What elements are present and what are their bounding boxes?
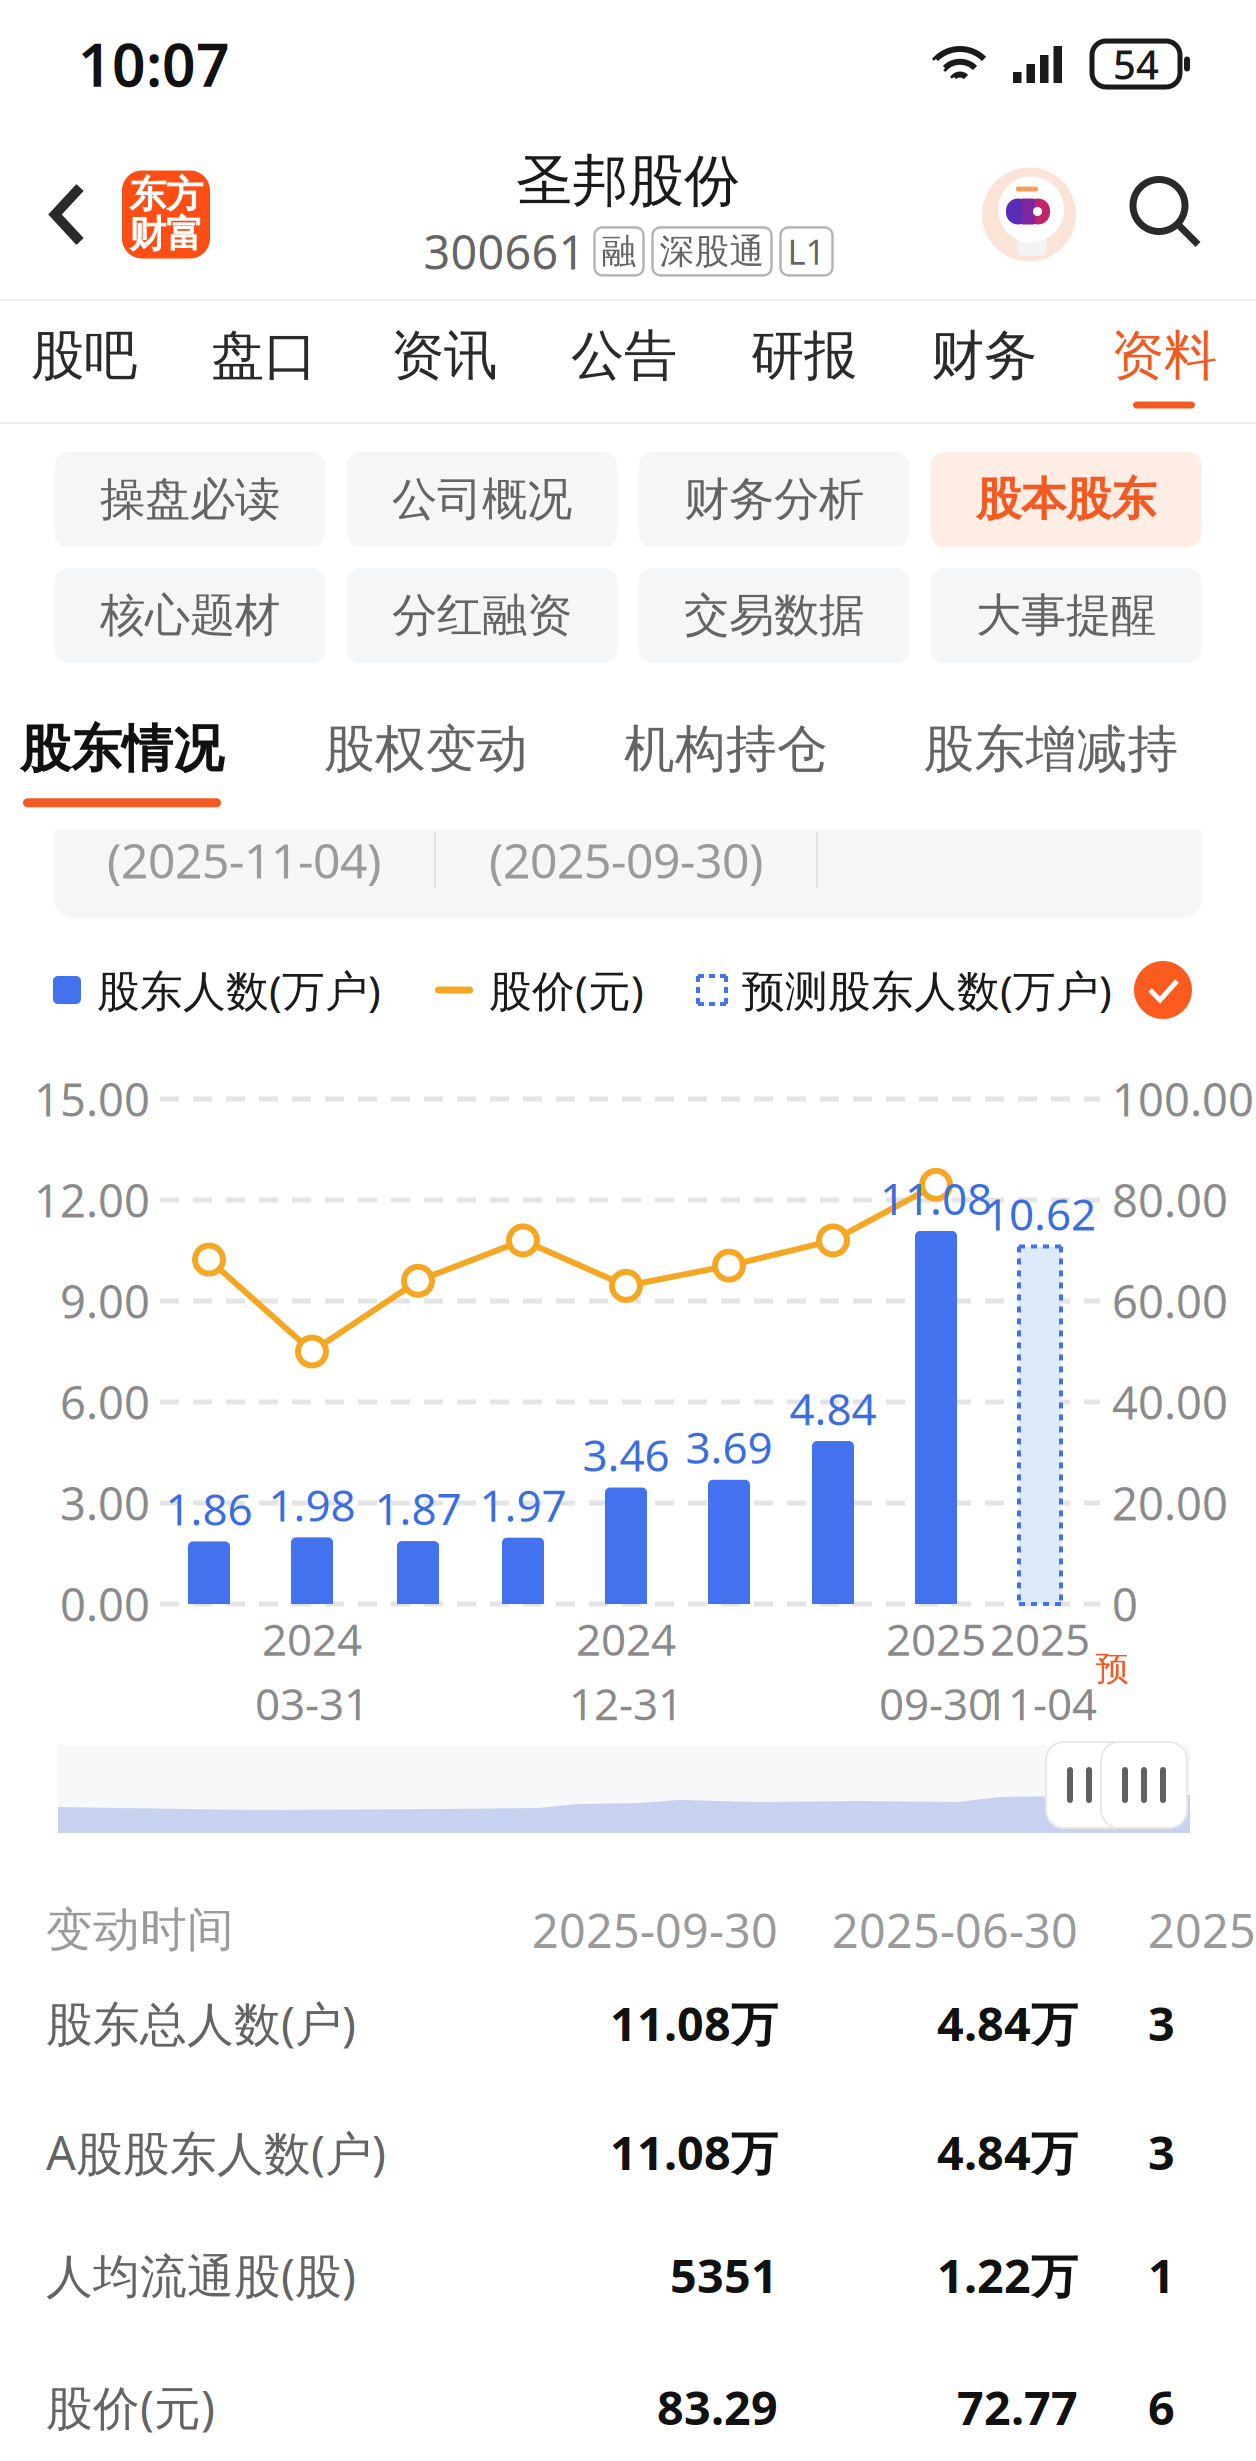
staticText: 股东情况 (20, 718, 224, 780)
staticText: 资料 (1111, 323, 1217, 388)
staticText: 10:07 (78, 25, 230, 103)
staticText: 6 (1148, 2376, 1175, 2438)
staticText: 预测股东人数(万户) (742, 962, 1112, 1018)
staticText: 11.08 (880, 1169, 992, 1227)
staticText: 盘口 (211, 323, 317, 388)
staticText: 股东总人数(户) (46, 1992, 356, 2054)
button[interactable]: 股本股东 (930, 452, 1201, 547)
staticText: 300661 (423, 220, 585, 282)
staticText: 机构持仓 (624, 718, 828, 780)
button[interactable]: 大事提醒 (930, 568, 1201, 663)
staticText: 03-31 (255, 1674, 369, 1732)
button[interactable]: 公告 (572, 301, 676, 424)
staticText: 3 (1148, 1992, 1175, 2054)
staticText: 11.08万 (610, 1992, 778, 2054)
staticText: 2025 (990, 1610, 1090, 1668)
button[interactable]: Back (14, 154, 122, 274)
staticText: 变动时间 (46, 1901, 234, 1959)
staticText: 股东人数(万户) (97, 962, 381, 1018)
staticText: 预 (1095, 1648, 1128, 1689)
staticText: 20.00 (1112, 1473, 1228, 1533)
staticText: (2025-09-30) (489, 828, 763, 892)
staticText: 2025 (886, 1610, 986, 1668)
staticText: 54 (1113, 37, 1159, 90)
button[interactable]: 研报 (752, 301, 856, 424)
staticText: 5351 (670, 2244, 778, 2306)
staticText: 80.00 (1112, 1170, 1228, 1230)
button[interactable]: 核心题材 (54, 568, 325, 663)
button[interactable]: 资料 (1112, 301, 1216, 424)
staticText: 东方 (129, 172, 203, 217)
staticText: 1.97 (479, 1475, 566, 1534)
button[interactable]: Range handle (1046, 1742, 1132, 1828)
staticText: 100.00 (1112, 1069, 1254, 1129)
staticText: 大事提醒 (976, 588, 1156, 643)
staticText: 60.00 (1112, 1271, 1228, 1331)
staticText: 11.08万 (610, 2121, 778, 2183)
staticText: 公告 (571, 323, 677, 388)
staticText: 股本股东 (976, 472, 1156, 527)
button[interactable]: AI assistant (982, 167, 1076, 261)
staticText: 财富 (129, 211, 203, 257)
staticText: 1.86 (165, 1479, 252, 1538)
staticText: 4.84 (789, 1379, 876, 1437)
staticText: 研报 (751, 323, 857, 388)
button[interactable]: 股东情况 (23, 694, 221, 830)
staticText: 1.87 (374, 1479, 461, 1537)
staticText: 股价(元) (489, 962, 644, 1018)
staticText: 72.77 (957, 2376, 1078, 2438)
staticText: 2025-06-30 (832, 1899, 1078, 1961)
staticText: 10.62 (984, 1184, 1096, 1243)
button[interactable]: East Money home (122, 170, 210, 258)
button[interactable]: 交易数据 (638, 568, 909, 663)
staticText: 财务 (931, 323, 1037, 388)
staticText: 操盘必读 (100, 472, 280, 527)
staticText: 2024 (262, 1610, 362, 1668)
staticText: 12.00 (34, 1170, 150, 1230)
staticText: 股价(元) (46, 2376, 215, 2438)
staticText: 交易数据 (684, 588, 864, 643)
staticText: 公司概况 (392, 472, 572, 527)
staticText: 核心题材 (100, 588, 280, 643)
staticText: 圣邦股份 (516, 147, 740, 215)
staticText: 分红融资 (392, 588, 572, 643)
staticText: 融 (601, 230, 636, 273)
staticText: 财务分析 (684, 472, 864, 527)
staticText: 1.98 (268, 1475, 355, 1533)
button[interactable]: 操盘必读 (54, 452, 325, 547)
staticText: 2025- (1148, 1899, 1256, 1961)
staticText: 人均流通股(股) (46, 2244, 356, 2306)
staticText: 11-04 (983, 1674, 1097, 1732)
staticText: 4.84万 (937, 1992, 1078, 2054)
button[interactable]: 财务分析 (638, 452, 909, 547)
button[interactable]: 股东增减持 (927, 694, 1175, 830)
staticText: 3.00 (60, 1473, 150, 1533)
staticText: 12-31 (569, 1674, 683, 1732)
button[interactable]: 分红融资 (346, 568, 617, 663)
button[interactable]: 公司概况 (346, 452, 617, 547)
staticText: 3 (1148, 2121, 1175, 2183)
staticText: 4.84万 (937, 2121, 1078, 2183)
staticText: L1 (787, 228, 825, 274)
staticText: 09-30 (879, 1674, 993, 1732)
staticText: 0.00 (60, 1574, 150, 1634)
button[interactable]: 机构持仓 (627, 694, 825, 830)
button[interactable]: 资讯 (392, 301, 496, 424)
button[interactable]: 股吧 (32, 301, 136, 424)
staticText: 3.46 (582, 1425, 669, 1484)
button[interactable]: 盘口 (212, 301, 316, 424)
staticText: 2024 (576, 1610, 676, 1668)
staticText: 0 (1112, 1574, 1138, 1634)
staticText: 股权变动 (324, 718, 528, 780)
button[interactable]: 股权变动 (327, 694, 525, 830)
staticText: 股吧 (31, 323, 137, 388)
staticText: (2025-11-04) (107, 828, 381, 892)
button[interactable]: Range handle (1101, 1742, 1187, 1828)
staticText: 83.29 (657, 2376, 778, 2438)
staticText: 2025-09-30 (532, 1899, 778, 1961)
button[interactable]: Collapse legend (1134, 961, 1192, 1019)
staticText: 资讯 (391, 323, 497, 388)
button[interactable]: 财务 (932, 301, 1036, 424)
staticText: 6.00 (60, 1372, 150, 1432)
button[interactable]: Search (1122, 168, 1214, 260)
